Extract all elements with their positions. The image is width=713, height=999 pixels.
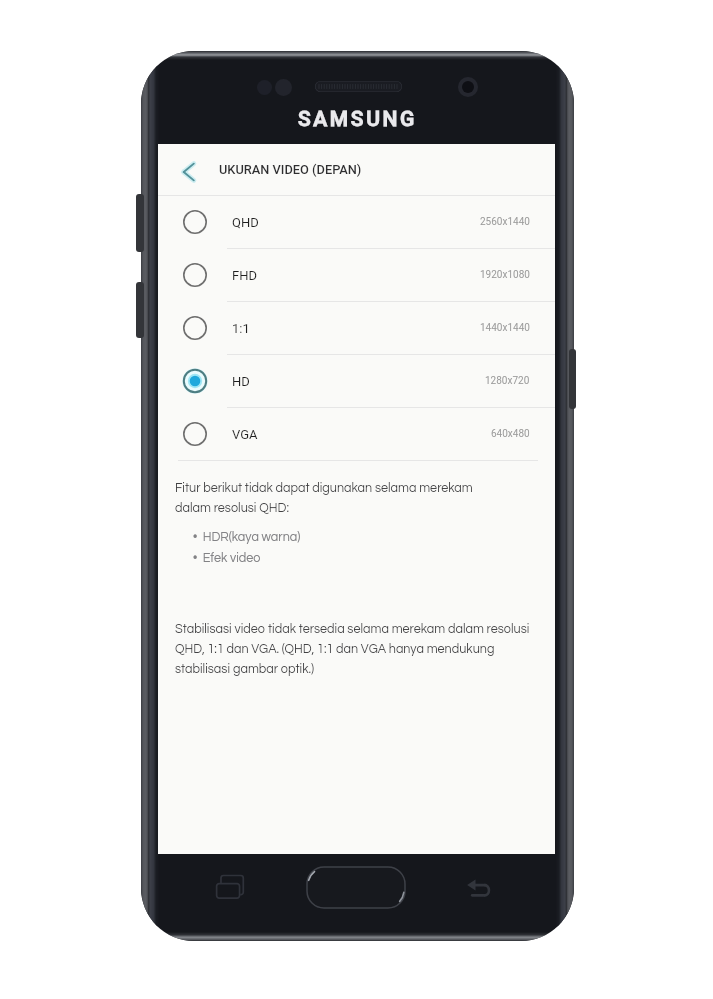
staticText: QHD xyxy=(232,215,259,230)
staticText: 1280x720 xyxy=(485,375,530,387)
staticText: UKURAN VIDEO (DEPAN) xyxy=(219,162,362,177)
staticText: Fitur berikut tidak dapat digunakan sela… xyxy=(175,482,473,515)
button[interactable]: FHD xyxy=(158,249,555,301)
staticText: FHD xyxy=(232,268,257,283)
button[interactable]: HD xyxy=(158,355,555,407)
button[interactable]: VGA xyxy=(158,408,555,460)
staticText: 1:1 xyxy=(232,321,250,336)
staticText: 1440x1440 xyxy=(480,322,530,334)
button[interactable]: 1:1 xyxy=(158,302,555,354)
staticText: 640x480 xyxy=(491,428,530,440)
button[interactable]: Home xyxy=(307,867,405,908)
button[interactable]: Recent apps xyxy=(213,869,249,905)
staticText: Stabilisasi video tidak tersedia selama … xyxy=(175,623,530,676)
staticText: HD xyxy=(232,374,250,389)
staticText: VGA xyxy=(232,427,258,442)
button[interactable]: Volume down xyxy=(136,282,144,338)
button[interactable]: Volume up xyxy=(136,194,144,252)
button[interactable]: Power xyxy=(569,349,576,409)
button[interactable]: QHD xyxy=(158,196,555,248)
staticText: SAMSUNG xyxy=(298,107,417,132)
button[interactable]: Navigate up xyxy=(168,151,210,193)
button[interactable]: Back xyxy=(462,870,498,906)
staticText: 1920x1080 xyxy=(480,269,530,281)
staticText: • Efek video xyxy=(193,552,261,565)
staticText: 2560x1440 xyxy=(480,216,530,228)
staticText: • HDR(kaya warna) xyxy=(193,531,301,544)
